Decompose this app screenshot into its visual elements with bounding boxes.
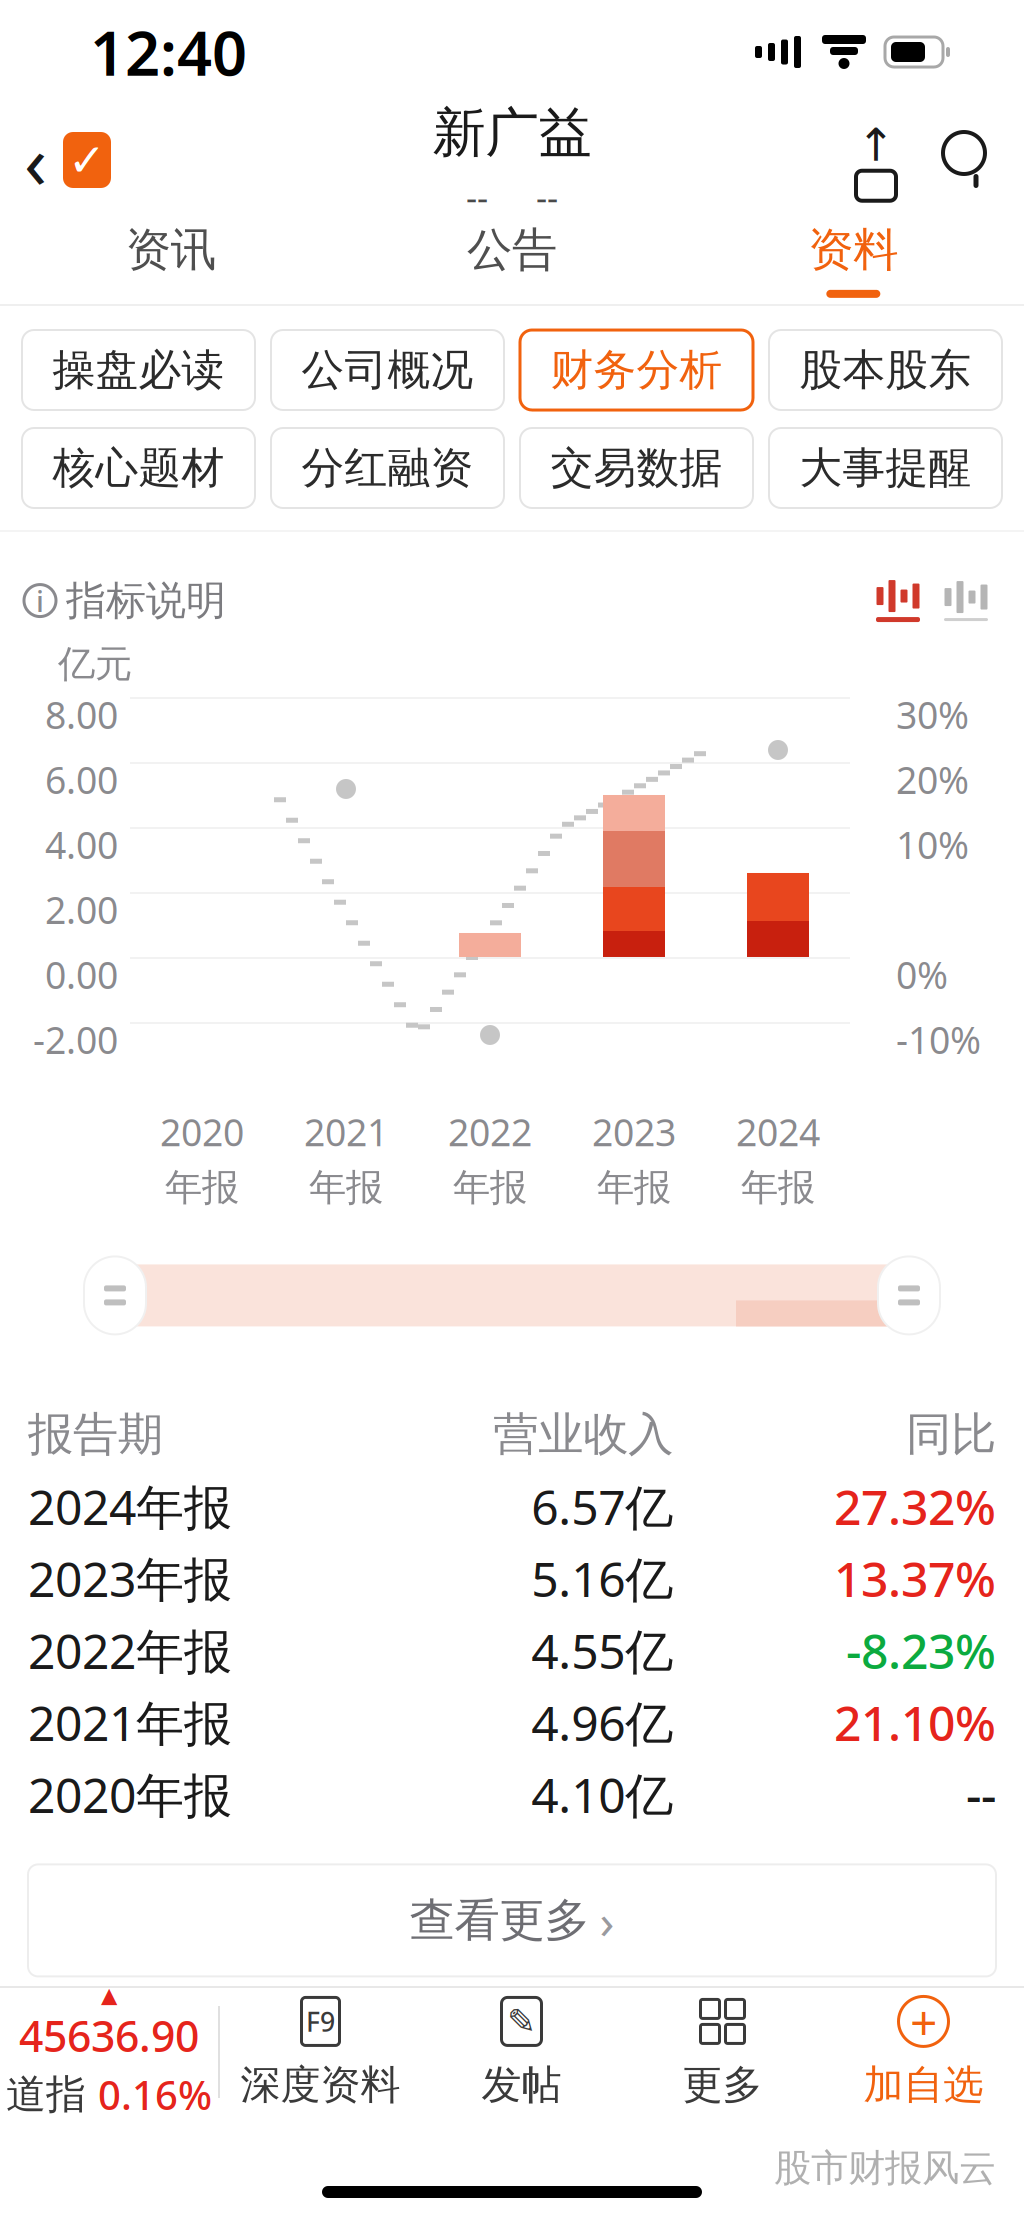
staticText: 27.32% bbox=[834, 1474, 996, 1538]
button[interactable]: ✎ bbox=[421, 1988, 622, 2116]
staticText: 年报 bbox=[165, 1165, 239, 1210]
staticText: 2020 bbox=[160, 1107, 244, 1157]
staticText: › bbox=[599, 1888, 614, 1952]
staticText: 道指 bbox=[6, 2070, 86, 2119]
staticText: 45636.90 bbox=[19, 2007, 199, 2064]
staticText: -- bbox=[966, 1762, 996, 1826]
staticText: 操盘必读 bbox=[52, 344, 224, 396]
staticText: -- bbox=[466, 174, 488, 220]
staticText: 股市财报风云 bbox=[774, 2145, 996, 2191]
staticText: 交易数据 bbox=[550, 442, 722, 494]
staticText: 21.10% bbox=[834, 1690, 996, 1754]
button[interactable]: Search bbox=[920, 108, 1008, 212]
staticText: 区公告 bbox=[296, 2062, 401, 2105]
staticText: 指标说明 bbox=[66, 576, 226, 625]
staticText: 年报 bbox=[453, 1165, 527, 1210]
staticText: -- bbox=[536, 174, 558, 220]
staticText: F9 bbox=[306, 2004, 335, 2039]
staticText: i bbox=[36, 581, 44, 620]
button[interactable]: F9 bbox=[220, 1988, 421, 2116]
staticText: 分红融资 bbox=[301, 442, 473, 494]
staticText: 10% bbox=[896, 820, 969, 869]
staticText: 2022年报 bbox=[28, 1618, 232, 1682]
button[interactable]: 公告 bbox=[341, 216, 683, 304]
button[interactable]: 操盘必读 bbox=[22, 330, 255, 410]
staticText: 2021 bbox=[304, 1107, 388, 1157]
button[interactable]: Share bbox=[832, 108, 920, 212]
staticText: 13.37% bbox=[834, 1546, 996, 1610]
staticText: ‹ bbox=[24, 110, 47, 210]
button[interactable]: 更多 bbox=[622, 1988, 823, 2116]
staticText: + bbox=[910, 1990, 937, 2053]
staticText: 公告 bbox=[467, 222, 557, 278]
button[interactable]: 分红融资 bbox=[271, 428, 504, 508]
staticText: 2022 bbox=[448, 1107, 532, 1157]
staticText: 年报 bbox=[309, 1165, 383, 1210]
button[interactable]: 资料 bbox=[683, 216, 1024, 304]
staticText: 更多 bbox=[682, 2060, 762, 2109]
button[interactable]: Grouped bar chart bbox=[932, 572, 1000, 630]
button[interactable]: i bbox=[24, 566, 226, 635]
staticText: 资料 bbox=[808, 222, 898, 278]
staticText: 4.55亿 bbox=[531, 1618, 673, 1682]
staticText: ↑ bbox=[857, 119, 895, 171]
staticText: 2020年报 bbox=[28, 1762, 232, 1826]
button[interactable]: Adjust range bbox=[878, 1256, 940, 1334]
staticText: -2.00 bbox=[33, 1015, 118, 1064]
staticText: 0.00 bbox=[45, 950, 118, 999]
staticText: 4.00 bbox=[45, 820, 118, 869]
staticText: 收支拆解 bbox=[28, 2047, 264, 2119]
staticText: 加自选 bbox=[863, 2060, 983, 2109]
staticText: 5.16亿 bbox=[531, 1546, 673, 1610]
staticText: 大事提醒 bbox=[799, 442, 971, 494]
button[interactable]: Back bbox=[0, 108, 135, 212]
button[interactable]: Stacked bar chart bbox=[864, 572, 932, 630]
staticText: 2023 bbox=[592, 1107, 676, 1157]
staticText: 深度资料 bbox=[240, 2060, 400, 2109]
button[interactable]: 查看更多 bbox=[28, 1864, 996, 1976]
staticText: 2024 bbox=[736, 1107, 820, 1157]
button[interactable]: 大事提醒 bbox=[769, 428, 1002, 508]
staticText: 年报 bbox=[597, 1165, 671, 1210]
button[interactable]: 交易数据 bbox=[520, 428, 753, 508]
staticText: 同比 bbox=[906, 1407, 996, 1462]
button[interactable]: 核心题材 bbox=[22, 428, 255, 508]
staticText: ✓ bbox=[68, 134, 106, 186]
button[interactable]: 资讯 bbox=[0, 216, 341, 304]
button[interactable]: 公司概况 bbox=[271, 330, 504, 410]
button[interactable]: 股本股东 bbox=[769, 330, 1002, 410]
staticText: 2.00 bbox=[45, 885, 118, 934]
staticText: 报告期 bbox=[28, 1407, 163, 1462]
staticText: -8.23% bbox=[846, 1618, 996, 1682]
staticText: 2023年报 bbox=[28, 1546, 232, 1610]
staticText: 0.16% bbox=[98, 2068, 212, 2121]
staticText: 资讯 bbox=[126, 222, 216, 278]
staticText: 营业收入 bbox=[493, 1407, 673, 1462]
staticText: 财务分析 bbox=[550, 344, 722, 396]
staticText: 查看更多 bbox=[409, 1893, 589, 1948]
staticText: 核心题材 bbox=[52, 442, 224, 494]
staticText: 6.57亿 bbox=[531, 1474, 673, 1538]
button[interactable]: Adjust range bbox=[84, 1256, 146, 1334]
staticText: 公司概况 bbox=[301, 344, 473, 396]
staticText: ✎ bbox=[507, 2002, 536, 2041]
staticText: 12:40 bbox=[90, 11, 247, 93]
staticText: 股本股东 bbox=[799, 344, 971, 396]
staticText: 新广益 bbox=[432, 100, 591, 166]
button[interactable]: + bbox=[823, 1988, 1024, 2116]
staticText: 6.00 bbox=[45, 755, 118, 804]
staticText: 4.96亿 bbox=[531, 1690, 673, 1754]
staticText: -10% bbox=[896, 1015, 981, 1064]
staticText: 亿元 bbox=[58, 641, 132, 687]
staticText: 20% bbox=[896, 755, 969, 804]
staticText: 30% bbox=[896, 690, 969, 739]
staticText: 发帖 bbox=[481, 2060, 561, 2109]
button[interactable]: 财务分析 bbox=[520, 330, 753, 410]
staticText: 0% bbox=[896, 950, 948, 999]
button[interactable]: ▲ bbox=[0, 1988, 218, 2116]
staticText: 2024年报 bbox=[28, 1474, 232, 1538]
staticText: 4.10亿 bbox=[531, 1762, 673, 1826]
staticText: 年报 bbox=[741, 1165, 815, 1210]
staticText: 8.00 bbox=[45, 690, 118, 739]
staticText: ▲ bbox=[101, 1983, 117, 2007]
